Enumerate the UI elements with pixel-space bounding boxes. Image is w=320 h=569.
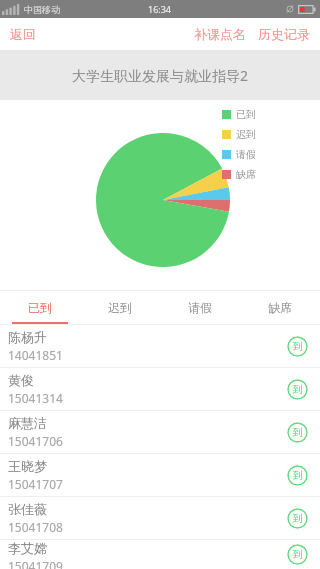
button[interactable]: 陈杨升: [0, 325, 320, 368]
button[interactable]: 返回: [0, 18, 46, 50]
staticText: 王晓梦: [8, 458, 47, 474]
staticText: 缺席: [268, 300, 292, 315]
staticText: 15041708: [8, 519, 63, 535]
staticText: 缺席: [236, 168, 256, 181]
staticText: 补课点名: [194, 26, 246, 42]
staticText: 到: [293, 512, 303, 525]
button[interactable]: 缺席: [240, 291, 320, 324]
staticText: 到: [293, 426, 303, 439]
staticText: 黄俊: [8, 372, 34, 388]
staticText: 14041851: [8, 347, 63, 363]
staticText: 张佳薇: [8, 501, 47, 517]
button[interactable]: 王晓梦: [0, 454, 320, 497]
staticText: 16:34: [148, 3, 172, 15]
staticText: 迟到: [236, 128, 256, 141]
staticText: 到: [293, 383, 303, 396]
button[interactable]: 已到: [287, 336, 308, 357]
staticText: 陈杨升: [8, 329, 47, 345]
staticText: 15041314: [8, 390, 63, 406]
staticText: 返回: [10, 26, 36, 42]
staticText: 到: [293, 340, 303, 353]
staticText: 已到: [28, 300, 52, 315]
staticText: 请假: [188, 300, 212, 315]
button[interactable]: 迟到: [80, 291, 160, 324]
staticText: 李艾嫦: [8, 540, 47, 556]
button[interactable]: 请假: [160, 291, 240, 324]
button[interactable]: 已到: [287, 465, 308, 486]
staticText: 到: [293, 469, 303, 482]
staticText: 15041707: [8, 476, 63, 492]
button[interactable]: 李艾嫦: [0, 540, 320, 569]
staticText: 请假: [236, 148, 256, 161]
staticText: 中国移动: [24, 4, 60, 15]
button[interactable]: 黄俊: [0, 368, 320, 411]
staticText: 已到: [236, 108, 256, 121]
staticText: 到: [293, 548, 303, 561]
button[interactable]: 已到: [287, 422, 308, 443]
button[interactable]: 补课点名: [188, 18, 252, 50]
button[interactable]: 已到: [0, 291, 80, 324]
staticText: 历史记录: [258, 26, 310, 42]
button[interactable]: 已到: [287, 544, 308, 565]
button[interactable]: 张佳薇: [0, 497, 320, 540]
staticText: 大学生职业发展与就业指导2: [72, 66, 249, 85]
staticText: 麻慧洁: [8, 415, 47, 431]
staticText: 迟到: [108, 300, 132, 315]
button[interactable]: 已到: [287, 508, 308, 529]
button[interactable]: 已到: [287, 379, 308, 400]
button[interactable]: 历史记录: [252, 18, 320, 50]
staticText: 15041706: [8, 433, 63, 449]
staticText: 15041709: [8, 558, 63, 569]
button[interactable]: 麻慧洁: [0, 411, 320, 454]
